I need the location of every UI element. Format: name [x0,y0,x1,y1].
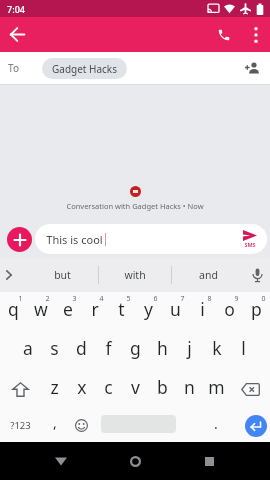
button[interactable]: a [14,331,41,370]
button[interactable]: SMS [243,230,257,248]
staticText: , [53,413,57,432]
button[interactable]: r [81,292,108,331]
button[interactable] [7,227,32,252]
button[interactable]: l [230,331,256,370]
button[interactable]: f [95,331,122,370]
button[interactable]: w [27,292,54,331]
staticText: n [184,375,195,399]
button[interactable]: v [122,370,149,409]
staticText: This is cool [46,232,103,247]
staticText: 6 [153,294,158,304]
staticText: 0 [261,294,266,304]
button[interactable]: g [122,331,149,370]
staticText: x [77,375,87,399]
staticText: 3 [72,294,77,304]
staticText: Gadget Hacks [52,62,117,76]
button[interactable] [0,370,41,409]
button[interactable] [234,52,270,84]
staticText: a [23,336,33,360]
staticText: 1 [18,294,23,304]
staticText: 8 [207,294,212,304]
staticText: k [212,336,222,360]
button[interactable] [207,17,241,52]
staticText: y [144,297,153,321]
staticText: and [199,268,218,282]
button[interactable]: p [243,292,270,331]
button[interactable]: m [203,370,230,409]
staticText: 9 [234,294,239,304]
staticText: z [50,375,59,399]
button[interactable] [98,442,172,480]
button[interactable]: e [54,292,81,331]
button[interactable]: but [26,258,98,292]
button[interactable]: b [149,370,176,409]
button[interactable]: , [41,409,68,442]
button[interactable]: s [41,331,68,370]
staticText: . [214,414,218,433]
button[interactable]: with [99,258,171,292]
button[interactable]: q [0,292,27,331]
staticText: c [104,375,113,399]
button[interactable]: x [68,370,95,409]
staticText: 7 [180,294,185,304]
staticText: e [63,297,73,321]
staticText: h [157,336,168,360]
staticText: 4 [99,294,104,304]
button[interactable] [24,442,98,480]
button[interactable]: c [95,370,122,409]
staticText: j [187,336,192,360]
staticText: d [76,336,87,360]
button[interactable]: This is cool [35,224,267,254]
staticText: i [200,297,205,321]
button[interactable]: k [203,331,230,370]
staticText: SMS [244,241,256,248]
button[interactable]: Gadget Hacks [42,58,127,79]
button[interactable]: h [149,331,176,370]
staticText: b [157,375,168,399]
button[interactable]: t [108,292,135,331]
button[interactable] [95,409,176,442]
staticText: m [208,375,225,399]
staticText: g [130,336,141,360]
staticText: t [118,297,125,321]
button[interactable]: y [135,292,162,331]
staticText: f [105,336,112,360]
staticText: 7:04 [7,3,25,15]
button[interactable] [172,442,246,480]
staticText: q [8,297,19,321]
staticText: To [8,61,19,75]
button[interactable]: j [176,331,203,370]
staticText: 2 [45,294,50,304]
staticText: but [54,268,71,282]
button[interactable] [245,415,267,437]
staticText: Conversation with Gadget Hacks • Now [66,201,204,211]
button[interactable]: and [172,258,244,292]
staticText: u [170,297,181,321]
staticText: r [91,297,99,321]
staticText: o [224,297,235,321]
staticText: l [241,336,246,360]
button[interactable] [244,258,270,292]
button[interactable] [68,409,95,442]
button[interactable]: z [41,370,68,409]
staticText: with [124,268,146,282]
staticText: v [131,375,140,399]
button[interactable] [230,370,270,409]
button[interactable]: . [176,409,243,442]
button[interactable] [0,258,26,292]
staticText: s [50,336,59,360]
button[interactable] [241,17,270,52]
staticText: p [251,297,262,321]
button[interactable] [0,17,34,52]
button[interactable]: u [162,292,189,331]
button[interactable]: i [189,292,216,331]
button[interactable]: o [216,292,243,331]
staticText: w [34,297,48,321]
staticText: ?123 [10,419,31,432]
staticText: 5 [126,294,131,304]
button[interactable]: d [68,331,95,370]
button[interactable]: ?123 [0,409,41,442]
button[interactable]: n [176,370,203,409]
